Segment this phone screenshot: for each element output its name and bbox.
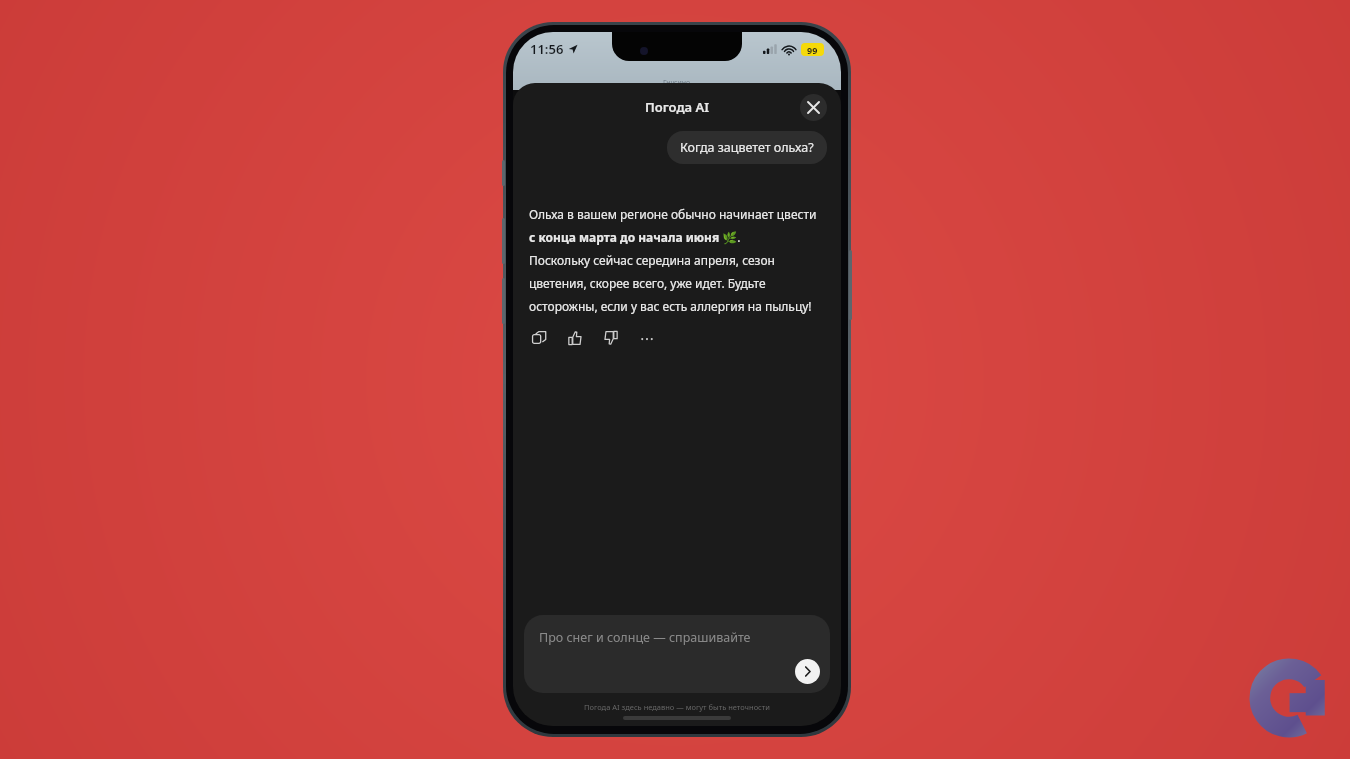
staticText: Ольха в вашем регионе обычно начинает цв… [529, 206, 825, 246]
button[interactable]: Когда зацветет ольха? [667, 131, 827, 164]
button[interactable]: Отправить [795, 659, 820, 684]
button[interactable]: Ещё [637, 328, 657, 348]
staticText: Про снег и солнце — спрашивайте [539, 629, 751, 646]
button[interactable]: Копировать [529, 328, 549, 348]
button[interactable]: Нравится [565, 328, 585, 348]
staticText: Когда зацветет ольха? [680, 139, 814, 156]
staticText: 11:56 [530, 40, 564, 58]
button[interactable]: Про снег и солнце — спрашивайте [524, 615, 830, 693]
button[interactable]: Не нравится [601, 328, 621, 348]
staticText: Погода AI здесь недавно — могут быть нет… [521, 702, 833, 712]
staticText: Гнусино [663, 78, 691, 88]
staticText: 99 [807, 44, 818, 56]
button[interactable]: Закрыть [800, 94, 827, 121]
staticText: Погода AI [645, 98, 709, 116]
staticText: Поскольку сейчас середина апреля, сезон … [529, 252, 825, 315]
